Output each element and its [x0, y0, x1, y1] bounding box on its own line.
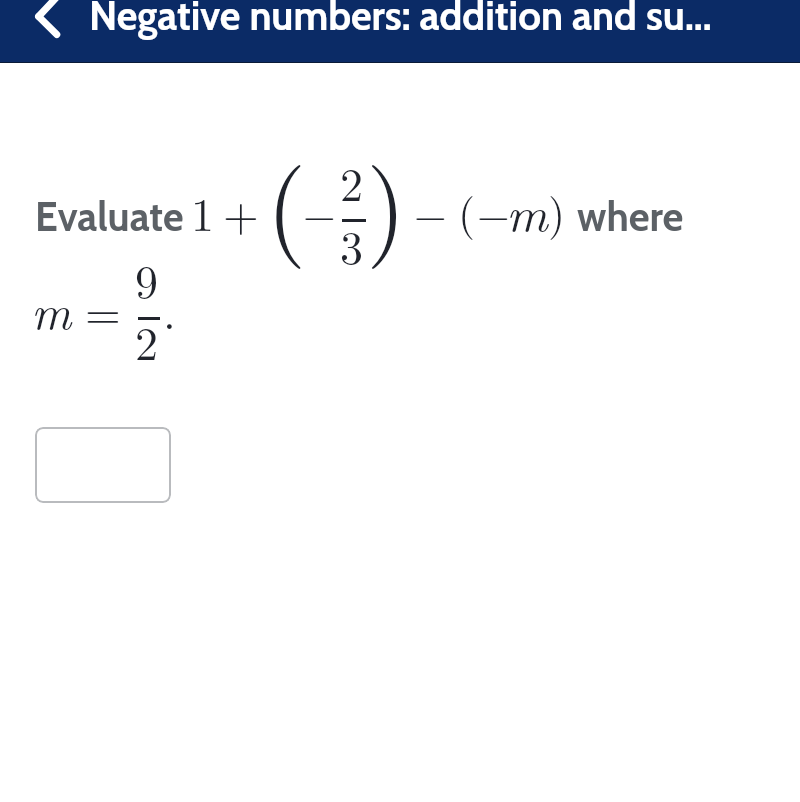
staticText: + [223, 179, 259, 244]
staticText: − [303, 183, 336, 243]
staticText: ( [458, 179, 476, 241]
staticText: 3 [340, 212, 363, 277]
staticText: ( [266, 126, 307, 273]
staticText: Evaluate [35, 192, 184, 241]
staticText: m [31, 277, 72, 342]
staticText: = [85, 277, 121, 342]
button[interactable]: Answer input field [35, 427, 171, 503]
staticText: ) [366, 126, 407, 273]
staticText: 2 [135, 308, 158, 373]
staticText: 1 [191, 179, 214, 244]
staticText: 2 [340, 149, 363, 214]
staticText: where [577, 192, 684, 241]
staticText: 9 [135, 246, 158, 311]
staticText: − [477, 183, 510, 243]
staticText: m [506, 179, 548, 244]
button[interactable]: Back [8, 0, 70, 62]
staticText: Negative numbers: addition and su... [89, 0, 712, 40]
staticText: . [163, 277, 176, 342]
staticText: − [414, 183, 447, 243]
staticText: ) [548, 179, 566, 241]
